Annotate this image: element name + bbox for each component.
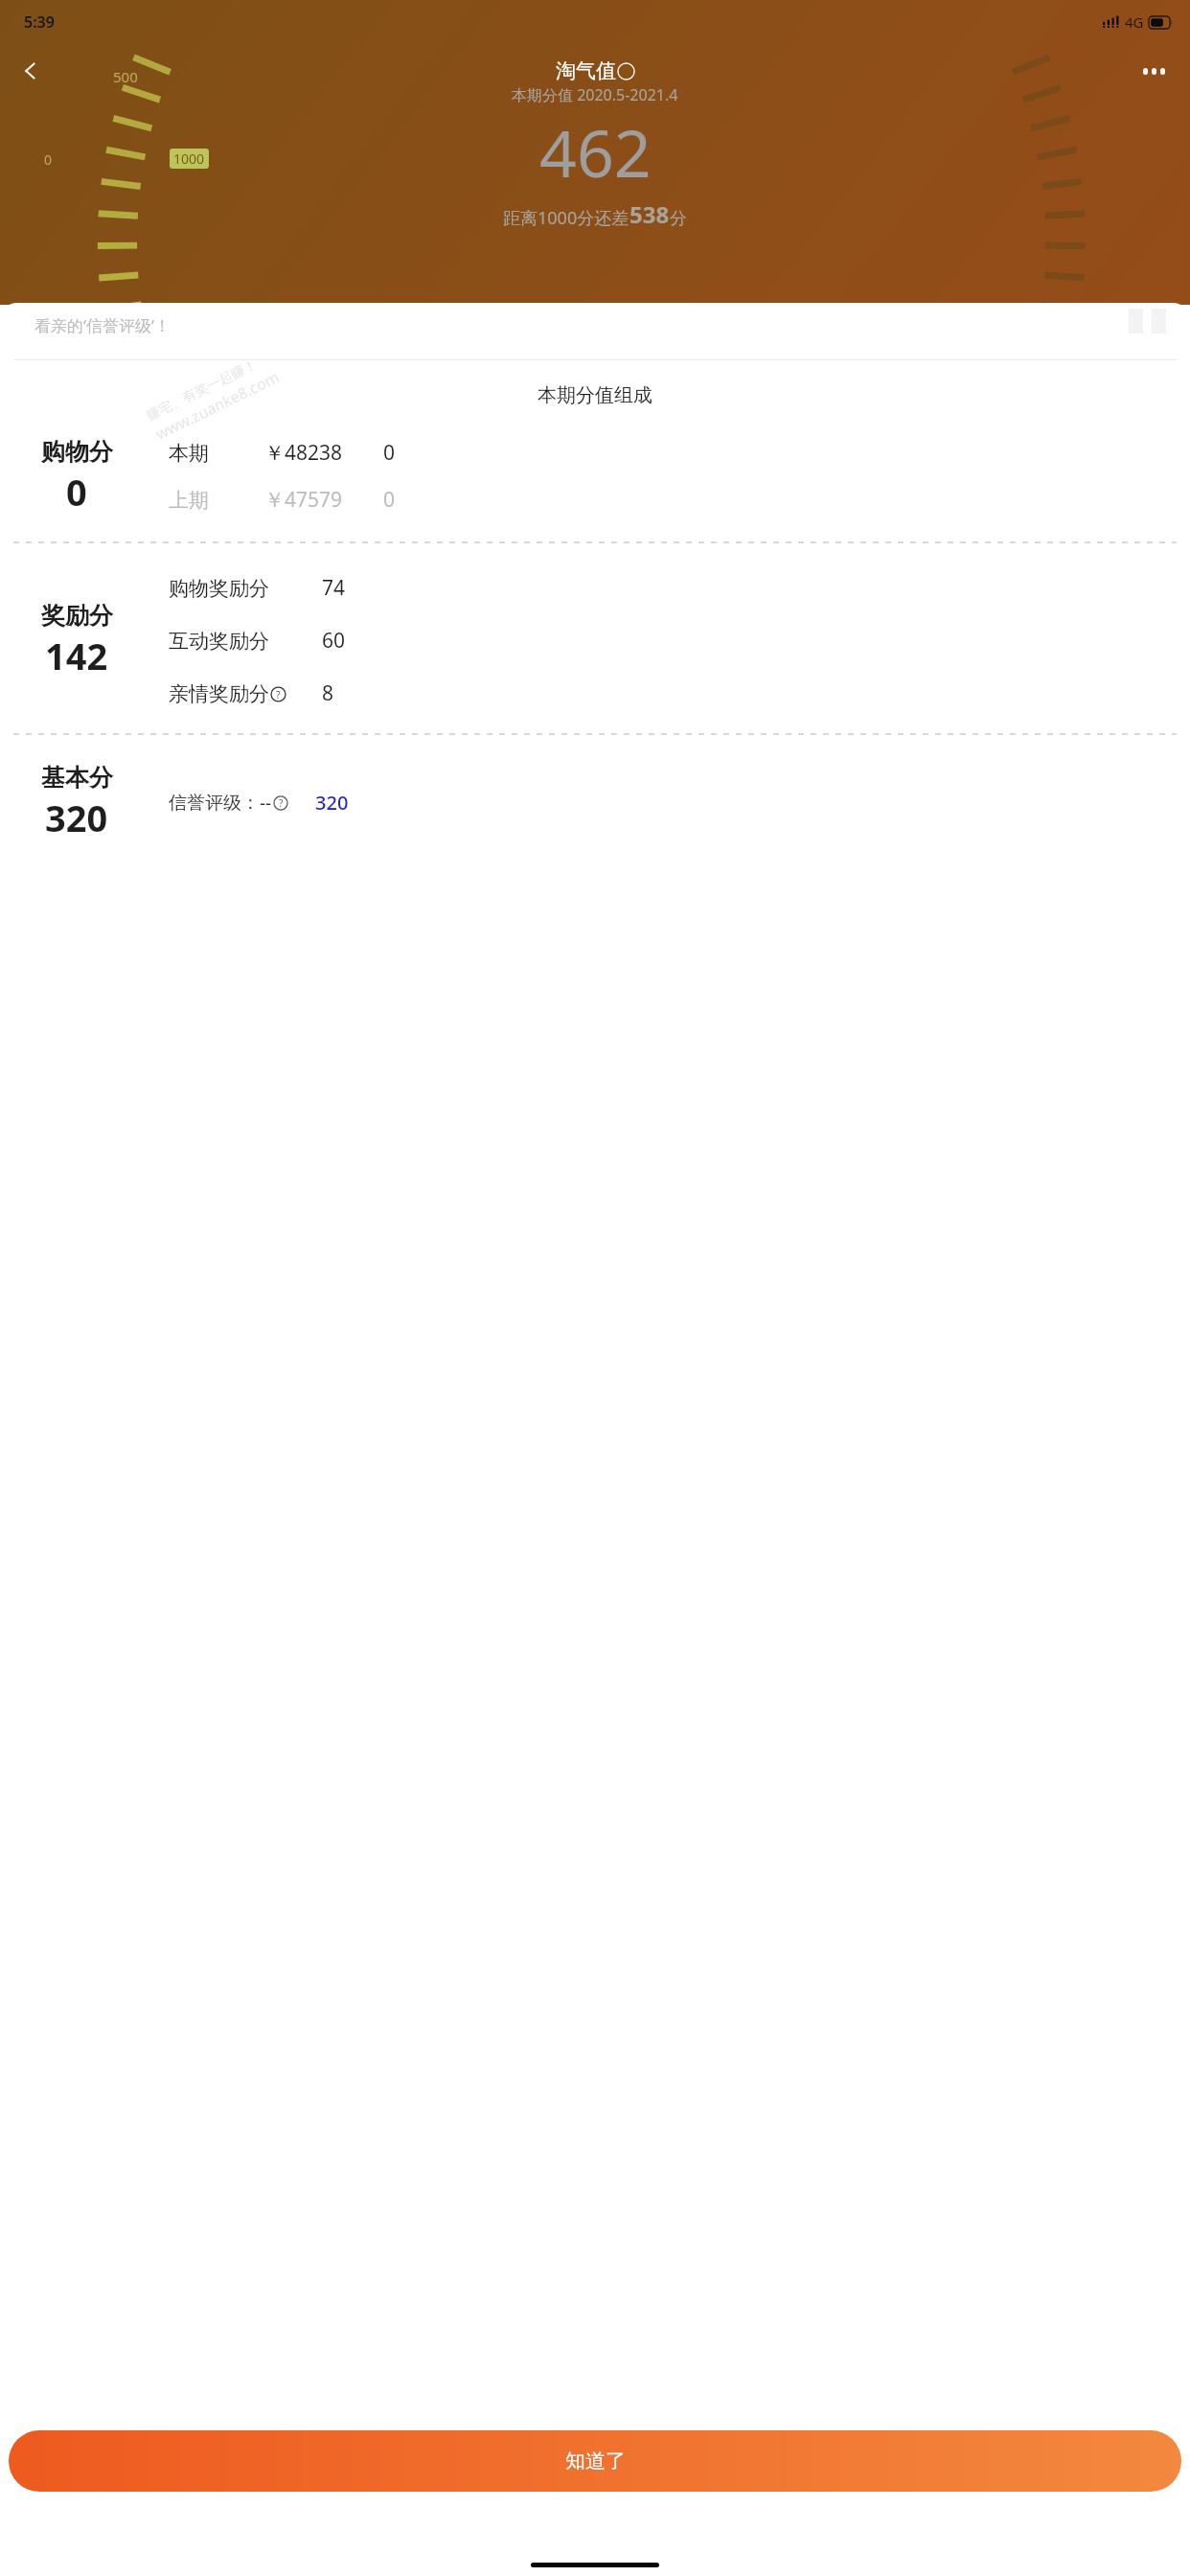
staticText: 看亲的‘信誉评级’！ [34, 314, 171, 336]
staticText: -- [260, 791, 272, 816]
button[interactable]: 购物奖励分 [153, 574, 1190, 602]
staticText: 信誉评级： [169, 792, 260, 815]
staticText: www.zuanke8.com [152, 366, 283, 444]
staticText: 淘气值 [556, 58, 616, 83]
staticText: 320 [45, 793, 108, 842]
staticText: ￥47579 [264, 486, 343, 514]
staticText: 500 [113, 67, 138, 86]
button[interactable]: 上期 [153, 486, 1190, 514]
staticText: 购物奖励分 [169, 576, 269, 601]
staticText: 0 [383, 486, 396, 514]
staticText: 赚宅、有奖一起赚！ [144, 356, 260, 425]
staticText: ? [279, 796, 284, 810]
button[interactable]: 亲情奖励分 [153, 679, 1190, 707]
staticText: 本期 [169, 441, 209, 466]
staticText: 60 [322, 627, 346, 655]
staticText: 分 [670, 208, 687, 230]
staticText: 0 [66, 467, 87, 517]
button[interactable]: Back [8, 48, 54, 94]
staticText: 538 [629, 198, 670, 230]
button[interactable]: 奖励分 [0, 601, 153, 680]
button[interactable]: 互动奖励分 [153, 627, 1190, 655]
button[interactable]: 购物分 [0, 437, 153, 517]
staticText: 互动奖励分 [169, 629, 269, 654]
staticText: 320 [315, 790, 349, 816]
button[interactable]: 基本分 [0, 763, 153, 842]
staticText: 亲情奖励分 [169, 681, 269, 706]
button[interactable]: 淘气值 [556, 58, 635, 83]
staticText: 购物分 [41, 437, 113, 467]
staticText: 4G [1125, 12, 1144, 32]
staticText: 上期 [169, 488, 209, 513]
staticText: ￥48238 [264, 439, 343, 467]
button[interactable]: More options [1131, 48, 1177, 94]
staticText: 本期分值 2020.5-2021.4 [512, 84, 678, 105]
staticText: 1000 [173, 149, 205, 168]
staticText: 距离1000分还差 [503, 206, 629, 230]
staticText: 本期分值组成 [538, 383, 652, 407]
button[interactable]: 本期 [153, 439, 1190, 467]
staticText: 奖励分 [41, 601, 113, 631]
staticText: 74 [322, 574, 346, 602]
staticText: 142 [45, 631, 108, 680]
staticText: 基本分 [41, 763, 113, 793]
staticText: ? [276, 688, 281, 701]
staticText: 0 [44, 150, 53, 169]
staticText: 462 [539, 107, 652, 196]
staticText: 5:39 [24, 11, 55, 33]
staticText: 8 [322, 679, 334, 707]
staticText: 知道了 [565, 2449, 626, 2473]
staticText: 0 [383, 439, 396, 467]
button[interactable]: 知道了 [9, 2430, 1181, 2492]
